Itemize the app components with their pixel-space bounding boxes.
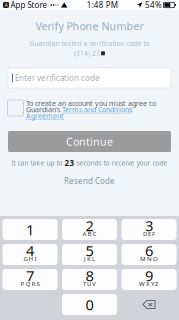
staticText: Continue xyxy=(66,134,113,149)
staticText: 1 xyxy=(26,219,34,239)
staticText: 7 xyxy=(26,265,34,285)
button[interactable]: Continue xyxy=(8,131,171,152)
staticText: 54% xyxy=(145,0,162,10)
staticText: Guardian texted a verification code to xyxy=(29,39,149,48)
staticText: App Store xyxy=(10,0,47,10)
button[interactable]: Resend Code xyxy=(59,176,119,186)
staticText: Enter verification code xyxy=(15,73,100,83)
staticText: To create an account you must agree to xyxy=(26,98,156,108)
staticText: 3 xyxy=(145,215,153,235)
button[interactable]: 5 xyxy=(62,244,117,265)
button[interactable]: 8 xyxy=(62,269,117,290)
staticText: Resend Code xyxy=(64,176,115,186)
staticText: G H I xyxy=(23,254,36,263)
button[interactable]: To create an account you must agree to xyxy=(7,100,178,126)
staticText: A B C xyxy=(82,229,96,238)
staticText: J K L xyxy=(84,254,95,263)
staticText: It can take up to xyxy=(11,159,64,167)
staticText: D E F xyxy=(143,229,155,238)
staticText: Terms and Conditions xyxy=(62,105,132,114)
button[interactable]: 1 xyxy=(2,219,57,240)
staticText: 4 xyxy=(26,240,34,260)
staticText: Verify Phone Number xyxy=(35,19,143,33)
staticText: 2 xyxy=(85,215,93,235)
staticText: 8 xyxy=(85,265,93,285)
staticText: T U V xyxy=(83,279,96,288)
staticText: 23 xyxy=(64,158,74,168)
staticText: seconds to receive your code xyxy=(74,159,167,167)
staticText: 1:48 PM xyxy=(87,0,118,10)
button[interactable]: 2 xyxy=(62,219,117,240)
staticText: A xyxy=(4,1,7,9)
staticText: (314) 27 xyxy=(74,49,100,58)
button[interactable]: 7 xyxy=(2,269,57,290)
staticText: 6 xyxy=(145,240,153,260)
staticText: Agreement xyxy=(26,111,64,120)
button[interactable]: 4 xyxy=(2,244,57,265)
staticText: P Q R S xyxy=(20,279,39,288)
staticText: W X Y Z xyxy=(139,279,159,288)
button[interactable]: 9 xyxy=(121,269,176,290)
staticText: 9 xyxy=(145,265,153,285)
staticText: 0 xyxy=(85,294,93,314)
staticText: M N O xyxy=(140,254,158,263)
button[interactable]: 3 xyxy=(121,219,176,240)
staticText: Guardian's xyxy=(26,105,62,114)
button[interactable]: Delete xyxy=(121,294,176,315)
staticText: 5 xyxy=(85,240,93,260)
button[interactable]: 6 xyxy=(121,244,176,265)
button[interactable]: 0 xyxy=(62,294,117,315)
